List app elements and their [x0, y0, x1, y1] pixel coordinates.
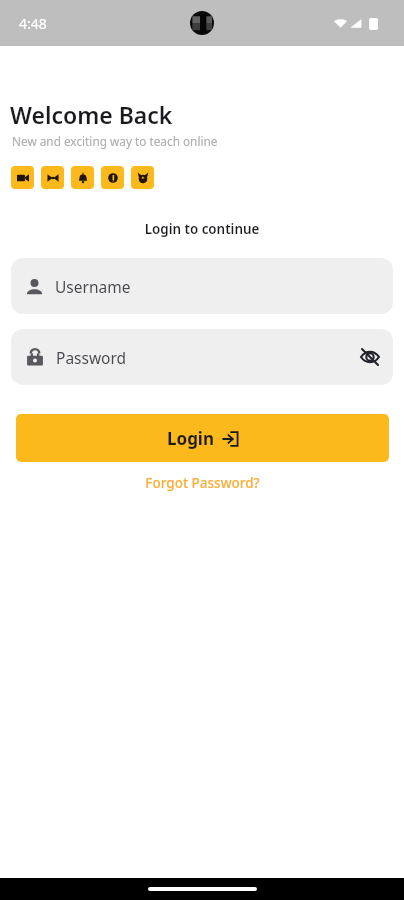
button[interactable]: Connect — [41, 166, 64, 189]
staticText: Password — [56, 347, 127, 368]
staticText: Forgot Password? — [145, 474, 260, 492]
staticText: Welcome Back — [10, 99, 173, 130]
staticText: New and exciting way to teach online — [12, 133, 218, 149]
button[interactable]: Settings — [101, 166, 124, 189]
button[interactable]: Username — [11, 258, 393, 314]
button[interactable]: Show password — [357, 344, 383, 370]
button[interactable]: Notifications — [71, 166, 94, 189]
staticText: Login — [167, 427, 215, 450]
button[interactable]: Password — [11, 329, 393, 385]
button[interactable]: Login — [16, 414, 389, 462]
staticText: 4:48 — [19, 14, 47, 33]
staticText: Login to continue — [0, 220, 404, 238]
button[interactable]: Forgot Password? — [0, 474, 404, 492]
button[interactable]: Rewards — [131, 166, 154, 189]
staticText: Username — [55, 276, 131, 297]
button[interactable]: Video — [11, 166, 34, 189]
